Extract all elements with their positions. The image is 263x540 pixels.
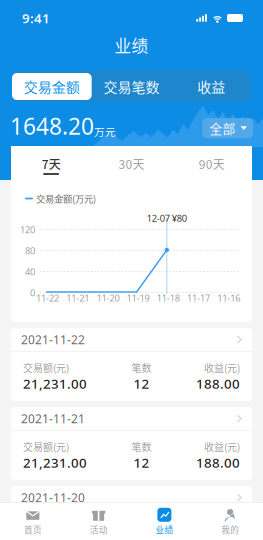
staticText: 首页 <box>24 523 42 536</box>
staticText: 11-17 <box>187 292 210 304</box>
staticText: 笔数 <box>131 360 151 375</box>
button[interactable]: 活动 <box>66 503 132 540</box>
staticText: 全部 <box>209 119 235 137</box>
button[interactable]: 交易金额 <box>12 73 92 100</box>
staticText: 12 <box>133 454 149 471</box>
button[interactable]: 收益 <box>171 73 251 100</box>
staticText: 40 <box>25 265 35 278</box>
staticText: 12 <box>133 375 149 392</box>
button[interactable]: 我的 <box>197 503 263 540</box>
staticText: 21,231.00 <box>23 375 87 392</box>
button[interactable]: 全部 <box>202 118 253 141</box>
staticText: 11-21 <box>66 292 89 304</box>
button[interactable]: 业绩 <box>131 503 197 540</box>
button[interactable]: 2021-11-20 <box>11 486 252 509</box>
staticText: 交易额(元) <box>23 360 69 375</box>
staticText: 我的 <box>221 523 239 536</box>
staticText: 0 <box>30 286 35 299</box>
staticText: 188.00 <box>196 454 240 471</box>
staticText: 188.00 <box>196 375 240 392</box>
staticText: 收益(元) <box>204 439 240 454</box>
staticText: 1648.20 <box>10 111 94 141</box>
button[interactable]: 2021-11-21 <box>11 407 252 430</box>
staticText: 30天 <box>118 155 144 172</box>
staticText: 2021-11-22 <box>21 332 85 347</box>
staticText: 业绩 <box>155 523 173 536</box>
staticText: 80 <box>25 244 35 257</box>
staticText: 活动 <box>90 523 108 536</box>
staticText: 12-07 ¥80 <box>147 212 187 224</box>
staticText: 收益(元) <box>204 518 240 533</box>
staticText: 90天 <box>199 155 225 172</box>
staticText: 收益 <box>197 76 225 97</box>
staticText: 21,231.00 <box>23 454 87 471</box>
button[interactable]: 交易笔数 <box>92 73 171 100</box>
button[interactable]: 30天 <box>91 146 172 179</box>
staticText: 交易笔数 <box>103 76 159 97</box>
staticText: 11-22 <box>36 292 59 304</box>
staticText: 11-18 <box>157 292 180 304</box>
staticText: 交易金额(万元) <box>36 192 96 205</box>
staticText: 交易额(元) <box>23 439 69 454</box>
staticText: 2021-11-21 <box>21 411 85 426</box>
staticText: 188.00 <box>196 533 240 540</box>
staticText: 21,231.00 <box>23 533 87 540</box>
staticText: 9:41 <box>22 9 50 27</box>
staticText: 11-16 <box>217 292 240 304</box>
staticText: 交易金额 <box>24 76 80 97</box>
staticText: 7天 <box>42 155 61 172</box>
button[interactable]: 90天 <box>172 146 252 179</box>
staticText: 120 <box>20 223 35 236</box>
button[interactable]: 7天 <box>11 146 91 179</box>
button[interactable]: 首页 <box>0 503 66 540</box>
staticText: 业绩 <box>114 33 148 57</box>
staticText: 收益(元) <box>204 360 240 375</box>
button[interactable]: 2021-11-22 <box>11 328 252 351</box>
staticText: 笔数 <box>131 439 151 454</box>
staticText: 11-20 <box>96 292 119 304</box>
staticText: 万元 <box>94 124 116 139</box>
staticText: 交易额(元) <box>23 518 69 533</box>
staticText: 11-19 <box>127 292 150 304</box>
staticText: 2021-11-20 <box>21 490 85 505</box>
